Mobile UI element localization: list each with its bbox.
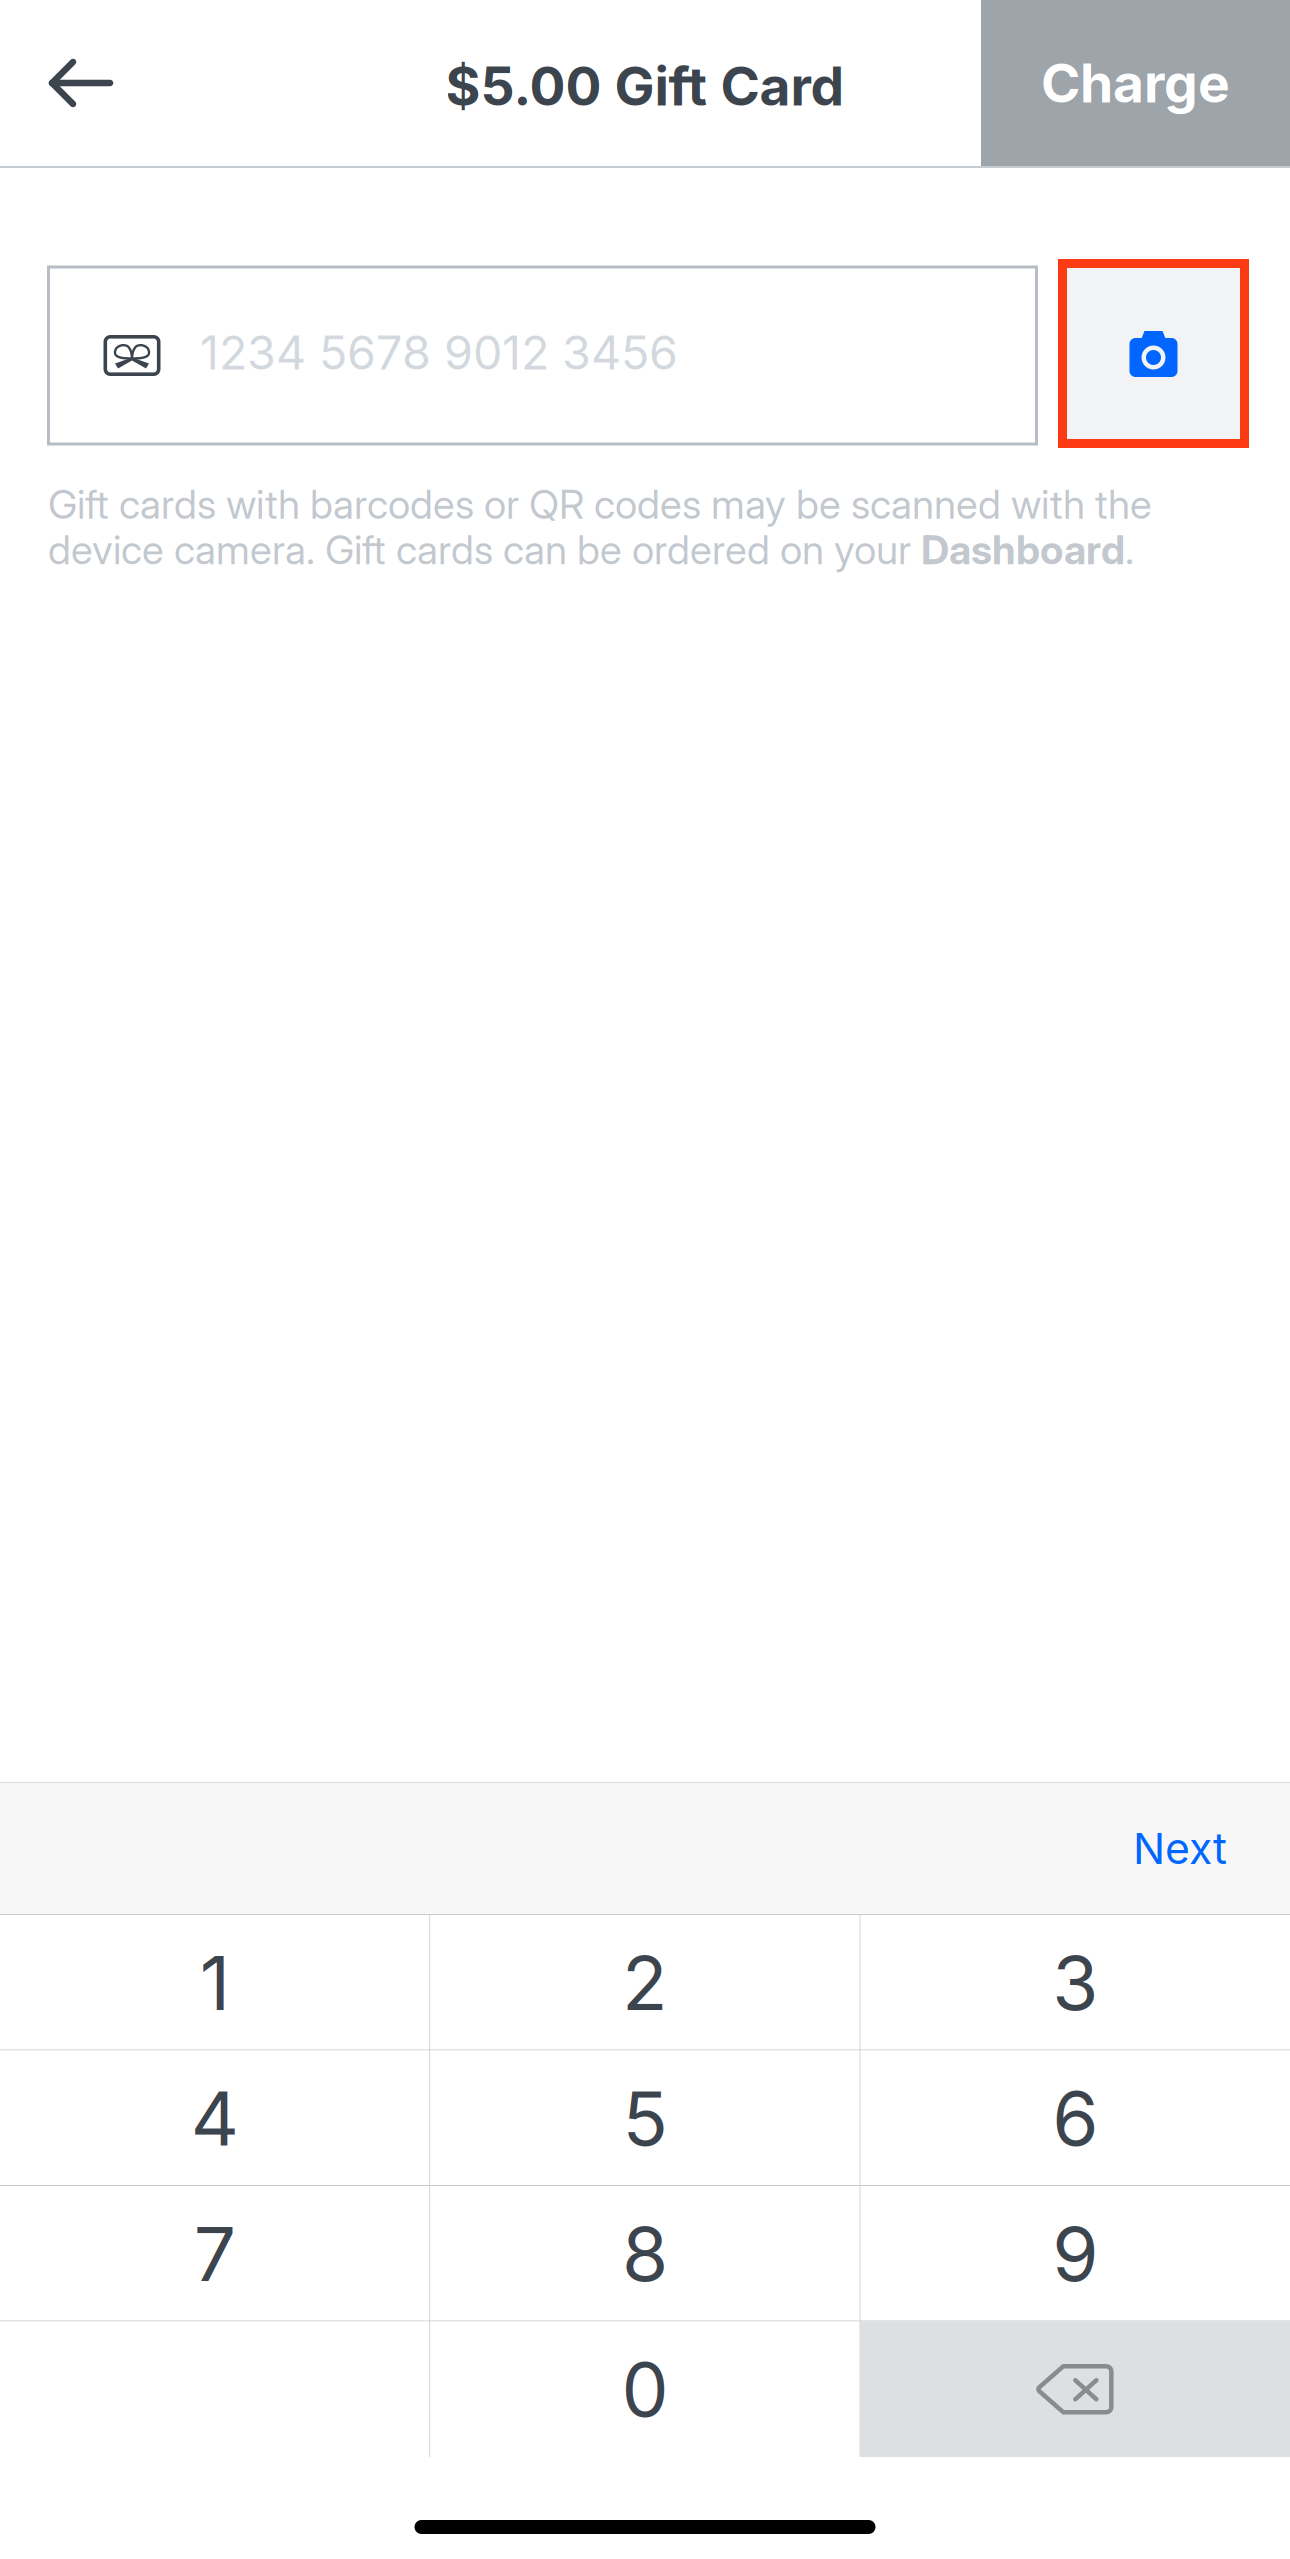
staticText: 0	[621, 2344, 668, 2434]
staticText: Gift cards with barcodes or QR codes may…	[48, 480, 1152, 574]
button[interactable]: Delete	[861, 2321, 1290, 2457]
button[interactable]: 6	[861, 2050, 1290, 2186]
button[interactable]: 4	[0, 2050, 429, 2186]
staticText: Next	[1133, 1823, 1227, 1874]
button[interactable]: 1	[0, 1915, 429, 2050]
staticText: 1234 5678 9012 3456	[200, 324, 678, 381]
staticText: 5	[622, 2073, 667, 2163]
button[interactable]: 2	[430, 1915, 860, 2050]
button[interactable]: Scan gift card with camera	[1058, 259, 1249, 448]
button[interactable]: 3	[861, 1915, 1290, 2050]
staticText: 7	[194, 2209, 236, 2299]
staticText: $5.00 Gift Card	[445, 54, 844, 118]
staticText: 2	[622, 1938, 668, 2028]
staticText: 6	[1052, 2073, 1098, 2163]
staticText: Charge	[1041, 51, 1230, 115]
staticText: 9	[1052, 2209, 1098, 2299]
button[interactable]: 9	[861, 2186, 1290, 2321]
staticText: 8	[622, 2209, 668, 2299]
button[interactable]: Back	[0, 0, 160, 168]
button[interactable]: Charge	[981, 0, 1290, 168]
button[interactable]: 8	[430, 2186, 860, 2321]
staticText: 3	[1052, 1938, 1098, 2028]
button[interactable]: 7	[0, 2186, 429, 2321]
button[interactable]: 5	[430, 2050, 860, 2186]
button[interactable]: 0	[430, 2321, 860, 2457]
staticText: 4	[191, 2073, 239, 2163]
staticText: 1	[200, 1938, 230, 2028]
button[interactable]: Next	[1133, 1782, 1290, 1915]
